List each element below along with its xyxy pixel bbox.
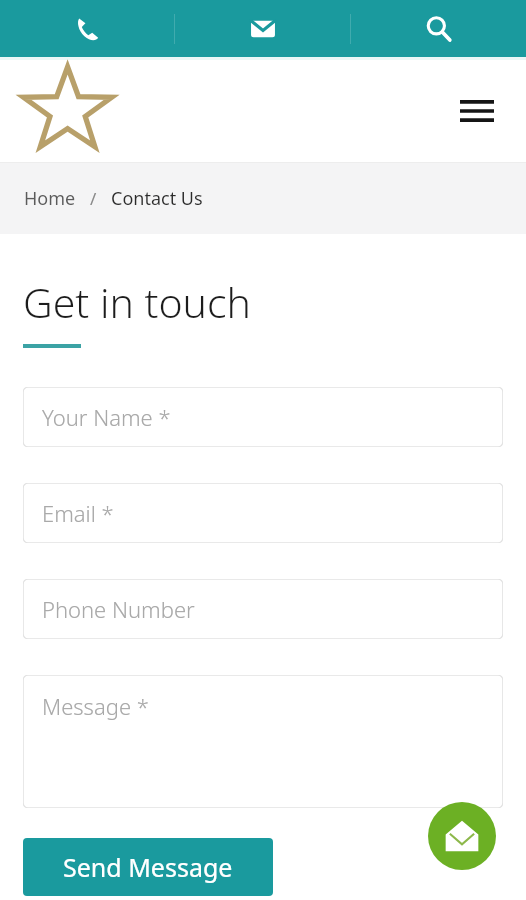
button[interactable]: USM Universal Star Multilok home bbox=[16, 63, 188, 159]
staticText: Your Name * bbox=[42, 402, 171, 432]
staticText: Send Message bbox=[63, 850, 233, 884]
button[interactable]: Message * bbox=[23, 675, 503, 808]
button[interactable]: Search bbox=[351, 0, 526, 57]
staticText: Get in touch bbox=[23, 274, 251, 330]
button[interactable]: Email bbox=[175, 0, 350, 57]
button[interactable]: Send Message bbox=[23, 838, 273, 896]
button[interactable]: Your Name * bbox=[23, 387, 503, 447]
staticText: Email * bbox=[42, 498, 114, 528]
button[interactable]: Home bbox=[24, 186, 76, 211]
button[interactable]: Call bbox=[0, 0, 174, 57]
staticText: / bbox=[90, 187, 97, 210]
staticText: Home bbox=[24, 186, 76, 211]
button[interactable]: Contact us bbox=[428, 802, 496, 870]
staticText: Message * bbox=[42, 691, 149, 721]
button[interactable]: Phone Number bbox=[23, 579, 503, 639]
button[interactable]: Menu bbox=[454, 88, 500, 134]
staticText: Contact Us bbox=[111, 186, 203, 211]
button[interactable]: Email * bbox=[23, 483, 503, 543]
staticText: Phone Number bbox=[42, 594, 195, 624]
